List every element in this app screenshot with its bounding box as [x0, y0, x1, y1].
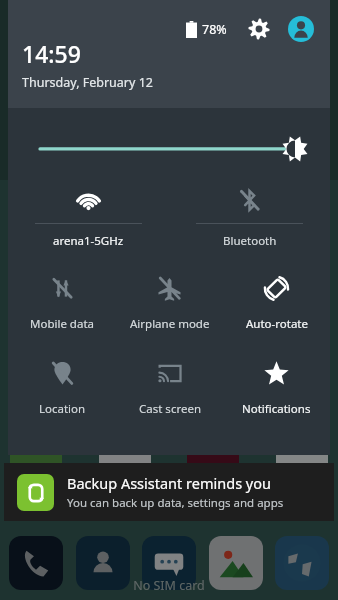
staticText: Cast screen	[139, 401, 201, 417]
staticText: Location	[39, 401, 86, 417]
button[interactable]: Bluetooth	[169, 176, 330, 261]
button[interactable]: 14:59	[22, 38, 153, 91]
staticText: 78%	[202, 21, 227, 38]
button[interactable]: Backup Assistant reminds you	[4, 463, 334, 521]
other: Battery	[186, 21, 197, 38]
button[interactable]: User profile	[286, 14, 316, 44]
staticText: Notifications	[242, 401, 311, 417]
staticText: Backup Assistant reminds you	[67, 473, 271, 493]
staticText: 14:59	[22, 38, 81, 69]
button[interactable]: Auto-rotate	[223, 261, 330, 346]
staticText: Airplane mode	[130, 316, 210, 332]
button[interactable]: Phone	[9, 536, 63, 590]
button[interactable]: Settings	[244, 14, 274, 44]
staticText: You can back up data, settings and apps	[67, 495, 284, 511]
button[interactable]: Airplane mode	[116, 261, 223, 346]
button[interactable]: Brightness	[8, 108, 330, 170]
button[interactable]: Notifications	[223, 346, 330, 431]
button[interactable]: Mobile data	[8, 261, 116, 346]
staticText: Mobile data	[30, 316, 94, 332]
button[interactable]: Browser	[275, 536, 329, 590]
button[interactable]: Contacts	[76, 536, 130, 590]
button[interactable]: arena1-5GHz	[8, 176, 169, 261]
button[interactable]: Cast screen	[116, 346, 223, 431]
button[interactable]: Location	[8, 346, 116, 431]
button[interactable]: Gallery	[209, 536, 263, 590]
staticText: No SIM card	[133, 577, 205, 594]
staticText: Thursday, February 12	[22, 74, 153, 91]
staticText: arena1-5GHz	[53, 233, 124, 249]
button[interactable]: Messages	[142, 536, 196, 590]
staticText: Auto-rotate	[246, 316, 308, 332]
staticText: Bluetooth	[223, 233, 277, 249]
